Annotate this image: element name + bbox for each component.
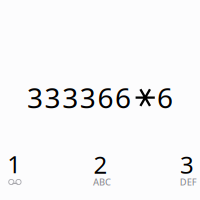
button[interactable]: Voicemail [0, 151, 45, 188]
staticText: 1 [7, 148, 21, 180]
staticText: 333366 [27, 79, 131, 116]
staticText: DEF [180, 176, 197, 188]
staticText: 3 [180, 149, 194, 180]
button[interactable]: 3 [156, 151, 200, 188]
staticText: ABC [93, 176, 111, 188]
button[interactable]: 2 [70, 151, 132, 188]
staticText: 2 [94, 149, 108, 180]
staticText: 6 [157, 79, 173, 116]
